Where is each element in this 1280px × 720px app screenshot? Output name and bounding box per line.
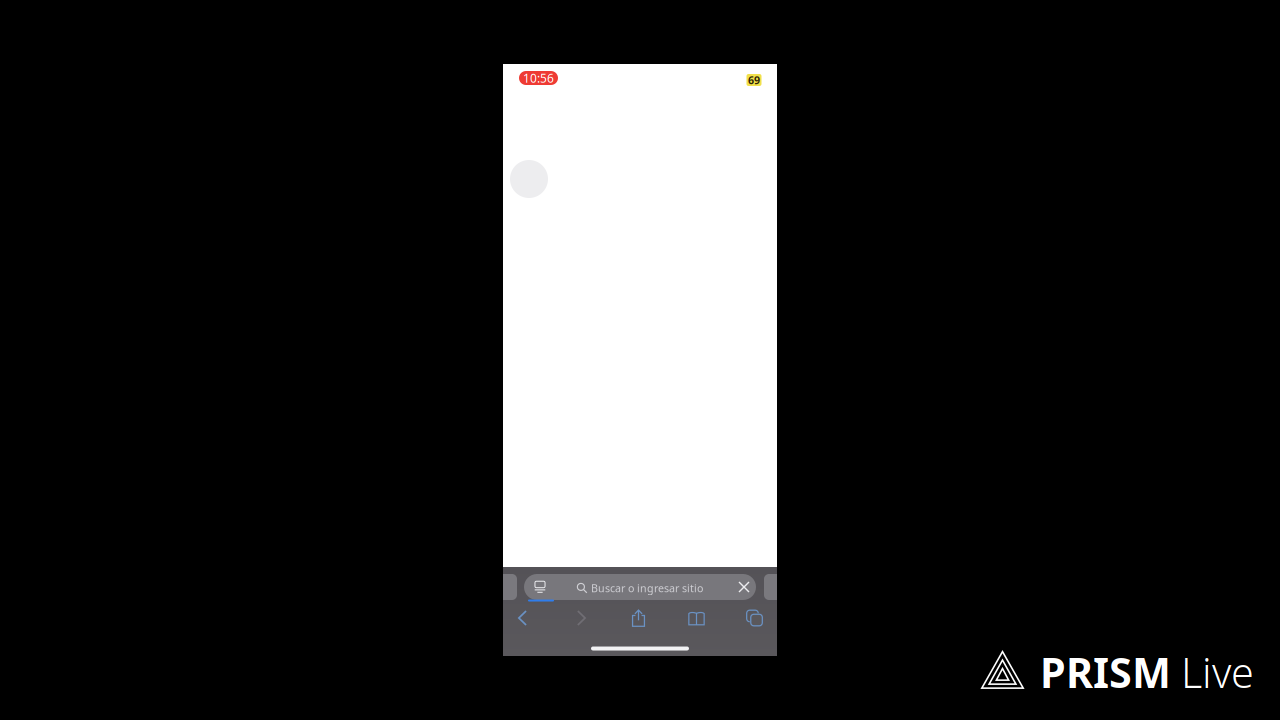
staticText: 10:56 (523, 70, 554, 86)
staticText: PRISM (1040, 645, 1171, 699)
button[interactable]: Buscar o ingresar sitio (524, 574, 756, 600)
button[interactable]: Back (504, 605, 540, 631)
staticText: 69 (748, 73, 760, 87)
button[interactable]: Forward (563, 605, 599, 631)
staticText: Buscar o ingresar sitio (591, 581, 703, 595)
button[interactable]: Page settings (525, 574, 555, 600)
button[interactable]: Stop loading (731, 574, 757, 600)
button[interactable]: Bookmarks (678, 605, 714, 631)
staticText: Live (1181, 645, 1254, 699)
button[interactable]: Tabs (736, 605, 772, 631)
button[interactable]: Share (620, 605, 656, 631)
